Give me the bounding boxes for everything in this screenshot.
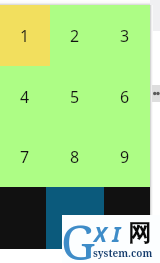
staticText: 8 [70,146,80,168]
staticText: 网 [128,219,151,248]
button[interactable]: 9 [100,127,150,187]
button[interactable]: 6 [100,66,150,127]
button[interactable]: 2 [50,5,100,66]
button[interactable]: 4 [0,66,50,127]
staticText: X I [94,220,121,249]
button[interactable]: 12 [46,187,104,249]
staticText: system.com [93,246,153,260]
staticText: G [61,209,96,263]
button[interactable]: 1 [0,5,50,66]
button[interactable]: 8 [50,127,100,187]
staticText: 2 [70,25,80,47]
staticText: 9 [120,146,130,168]
staticText: 3 [120,25,130,47]
staticText: 5 [70,86,80,108]
staticText: 7 [20,146,30,168]
button[interactable]: 5 [50,66,100,127]
button[interactable]: More options [152,85,160,102]
staticText: 4 [20,86,30,108]
staticText: 12 [65,211,80,229]
staticText: 6 [120,86,130,108]
button[interactable]: 3 [100,5,150,66]
button[interactable]: 7 [0,127,50,187]
staticText: 1 [20,25,30,47]
